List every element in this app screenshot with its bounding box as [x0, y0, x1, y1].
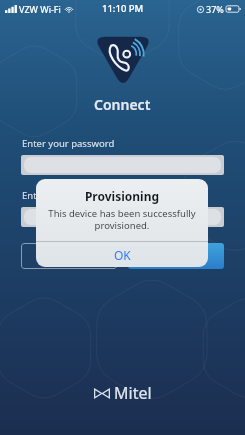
staticText: 11:10 PM [102, 2, 144, 15]
button[interactable] [24, 209, 221, 225]
staticText: Mitel [114, 382, 152, 404]
button[interactable]: Sign In [128, 243, 224, 269]
staticText: OK [114, 247, 131, 263]
staticText: Enter your password [22, 137, 245, 150]
staticText: Connect [94, 95, 151, 114]
staticText: VZW Wi-Fi [19, 3, 61, 15]
staticText: Provisioning [36, 188, 208, 204]
staticText: This device has been successfully provis… [45, 207, 199, 232]
button[interactable]: Back [21, 243, 117, 269]
button[interactable]: OK [36, 242, 208, 267]
staticText: Enter your username [22, 189, 245, 202]
staticText: 37% [206, 3, 224, 15]
